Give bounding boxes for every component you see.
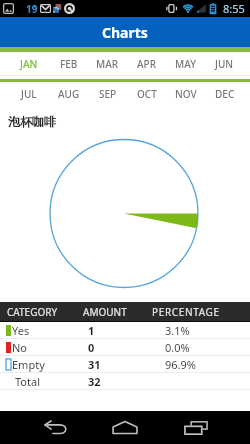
button[interactable]: FEB bbox=[49, 52, 88, 75]
button[interactable]: Home bbox=[97, 411, 153, 444]
staticText: Charts bbox=[102, 23, 148, 42]
staticText: NOV bbox=[175, 87, 197, 101]
staticText: DEC bbox=[215, 87, 235, 101]
button[interactable]: AUG bbox=[49, 82, 88, 105]
staticText: 0 bbox=[88, 340, 95, 355]
staticText: 32 bbox=[88, 374, 101, 389]
staticText: Empty bbox=[12, 357, 45, 372]
staticText: SEP bbox=[99, 87, 117, 101]
staticText: Yes bbox=[12, 323, 30, 338]
button[interactable]: Empty bbox=[0, 356, 250, 372]
button[interactable]: Recents bbox=[168, 411, 223, 444]
staticText: 31 bbox=[88, 357, 101, 372]
staticText: AUG bbox=[58, 87, 80, 101]
button[interactable]: Yes bbox=[0, 322, 250, 338]
button[interactable]: JUL bbox=[9, 82, 49, 105]
staticText: FEB bbox=[60, 57, 78, 71]
button[interactable]: Total bbox=[0, 373, 250, 389]
button[interactable]: No bbox=[0, 339, 250, 355]
staticText: 96.9% bbox=[165, 357, 196, 372]
staticText: MAY bbox=[175, 57, 196, 71]
button[interactable]: DEC bbox=[205, 82, 244, 105]
staticText: AMOUNT bbox=[83, 305, 127, 319]
staticText: 3.1% bbox=[165, 323, 190, 338]
staticText: JAN bbox=[20, 57, 38, 71]
button[interactable]: JUN bbox=[205, 52, 244, 75]
button[interactable]: Back bbox=[28, 411, 83, 444]
button[interactable]: APR bbox=[127, 52, 166, 75]
button[interactable]: MAY bbox=[166, 52, 205, 75]
staticText: 1 bbox=[88, 323, 95, 338]
staticText: 8:55 bbox=[223, 1, 245, 16]
button[interactable]: SEP bbox=[88, 82, 127, 105]
button[interactable]: NOV bbox=[166, 82, 205, 105]
button[interactable]: OCT bbox=[127, 82, 166, 105]
staticText: MAR bbox=[96, 57, 119, 71]
staticText: OCT bbox=[137, 87, 157, 101]
staticText: 0.0% bbox=[165, 340, 190, 355]
staticText: CATEGORY bbox=[7, 305, 58, 319]
staticText: No bbox=[12, 340, 28, 355]
button[interactable]: MAR bbox=[88, 52, 127, 75]
staticText: JUN bbox=[215, 57, 234, 71]
staticText: APR bbox=[137, 57, 156, 71]
staticText: 泡杯咖啡 bbox=[8, 114, 56, 129]
staticText: Total bbox=[15, 374, 40, 389]
button[interactable]: JAN bbox=[9, 52, 49, 75]
staticText: JUL bbox=[21, 87, 37, 101]
staticText: PERCENTAGE bbox=[152, 305, 220, 319]
staticText: 19 bbox=[26, 2, 38, 16]
